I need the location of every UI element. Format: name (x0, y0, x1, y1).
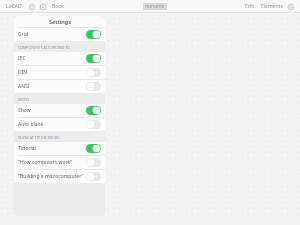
staticText: Grid (18, 31, 29, 38)
staticText: Edit (245, 3, 254, 10)
staticText: Show (18, 107, 31, 114)
button[interactable]: On (86, 106, 101, 115)
button[interactable]: Book (51, 3, 65, 10)
staticText: noname (145, 3, 165, 10)
staticText: Tutorial (18, 145, 36, 152)
staticText: Auto blank (18, 121, 44, 128)
staticText: "Building a microcomputer" (18, 173, 84, 180)
button[interactable]: Edit (244, 3, 255, 10)
button[interactable]: "How computers work" (14, 156, 105, 169)
staticText: IEC (18, 55, 26, 62)
button[interactable]: On (86, 144, 101, 153)
staticText: "How computers work" (18, 159, 73, 166)
staticText: ANSI (18, 83, 30, 90)
staticText: SHOW AT TIP ON 'BOOK' (18, 135, 60, 140)
button[interactable]: Off (86, 68, 101, 77)
button[interactable]: "Building a microcomputer" (14, 170, 105, 183)
button[interactable]: noname (143, 3, 167, 10)
staticText: LoCAD (6, 3, 22, 10)
button[interactable]: Info (39, 3, 47, 11)
button[interactable]: Settings (28, 3, 36, 11)
button[interactable]: Off (86, 120, 101, 129)
staticText: COMPONENTS ACCORDING TO (18, 45, 71, 50)
button[interactable]: ANSI (14, 80, 105, 93)
button[interactable]: More options (287, 3, 295, 11)
staticText: Settings (49, 18, 71, 25)
staticText: Book (52, 3, 64, 10)
button[interactable]: Auto blank (14, 118, 105, 131)
button[interactable]: Show (14, 104, 105, 117)
button[interactable]: On (86, 54, 101, 63)
button[interactable]: On (86, 30, 101, 39)
button[interactable]: LoCAD (5, 3, 23, 10)
button[interactable]: Off (86, 158, 101, 167)
button[interactable]: Tutorial (14, 142, 105, 155)
staticText: Elements (261, 3, 283, 10)
button[interactable]: IEC (14, 52, 105, 65)
button[interactable]: Off (86, 82, 101, 91)
button[interactable]: Grid (14, 28, 105, 41)
button[interactable]: Off (86, 172, 101, 181)
button[interactable]: DIN (14, 66, 105, 79)
staticText: DIN (18, 69, 28, 76)
button[interactable]: Elements (260, 3, 284, 10)
staticText: NOTES (18, 97, 30, 102)
